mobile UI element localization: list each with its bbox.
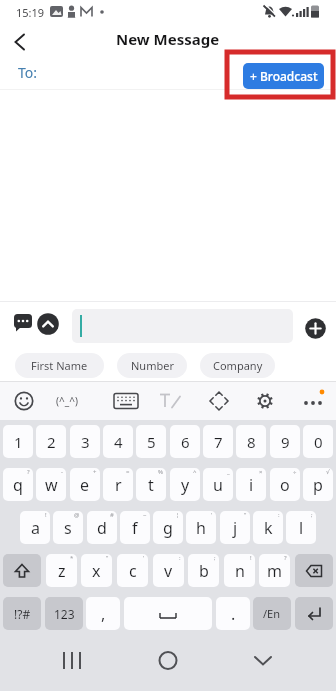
button[interactable] xyxy=(151,381,189,420)
button[interactable]: First Name xyxy=(15,353,104,378)
button[interactable]: y xyxy=(170,468,200,501)
button[interactable]: j xyxy=(220,511,250,544)
button[interactable]: x xyxy=(81,554,112,587)
button[interactable]: b xyxy=(188,554,219,587)
button[interactable] xyxy=(305,318,326,339)
button[interactable]: !?# xyxy=(3,597,41,630)
button[interactable]: i xyxy=(236,468,266,501)
button[interactable] xyxy=(294,381,332,420)
staticText: k xyxy=(264,517,273,539)
button[interactable] xyxy=(295,597,333,630)
button[interactable] xyxy=(200,381,238,420)
button[interactable] xyxy=(295,554,333,587)
staticText: c xyxy=(129,560,137,582)
staticText: w xyxy=(45,474,58,496)
staticText: q xyxy=(13,474,23,496)
button[interactable]: g xyxy=(153,511,183,544)
button[interactable]: 8 xyxy=(236,425,266,458)
button[interactable]: t xyxy=(136,468,166,501)
button[interactable]: 5 xyxy=(136,425,166,458)
button[interactable]: q xyxy=(3,468,33,501)
staticText: × xyxy=(259,468,263,476)
staticText: √ xyxy=(326,468,330,475)
staticText: f xyxy=(132,517,138,539)
button[interactable]: o xyxy=(270,468,300,501)
staticText: p xyxy=(313,474,323,496)
staticText: !?# xyxy=(14,606,31,622)
staticText: ÷ xyxy=(293,468,297,476)
button[interactable]: 4 xyxy=(103,425,133,458)
staticText: u xyxy=(213,474,223,496)
button[interactable]: 123 xyxy=(45,597,83,630)
staticText: i xyxy=(249,474,254,496)
button[interactable] xyxy=(72,309,293,343)
button[interactable]: Company xyxy=(200,353,275,378)
button[interactable] xyxy=(52,381,90,420)
button[interactable]: Number xyxy=(117,353,187,378)
button[interactable]: 9 xyxy=(270,425,300,458)
button[interactable]: . xyxy=(216,597,250,630)
staticText: l xyxy=(299,517,304,539)
staticText: * xyxy=(70,554,74,562)
staticText: 123 xyxy=(54,606,75,622)
button[interactable] xyxy=(107,381,145,420)
button[interactable]: /En xyxy=(253,597,291,630)
staticText: + xyxy=(93,468,97,476)
staticText: " xyxy=(244,511,247,519)
button[interactable]: n xyxy=(224,554,255,587)
staticText: 1 xyxy=(14,432,23,452)
staticText: s xyxy=(64,517,72,539)
staticText: x xyxy=(92,560,101,582)
staticText: v xyxy=(164,560,173,582)
staticText: n xyxy=(235,560,245,582)
staticText: r xyxy=(115,474,122,496)
button[interactable] xyxy=(5,381,43,420)
button[interactable]: h xyxy=(186,511,216,544)
button[interactable]: 0 xyxy=(303,425,333,458)
button[interactable] xyxy=(6,28,34,56)
button[interactable]: z xyxy=(46,554,77,587)
staticText: ^ xyxy=(193,468,197,476)
button[interactable]: + Broadcast xyxy=(243,63,324,89)
button[interactable]: c xyxy=(117,554,148,587)
button[interactable]: e xyxy=(70,468,100,501)
button[interactable]: r xyxy=(103,468,133,501)
staticText: ? xyxy=(27,468,30,476)
staticText: : xyxy=(278,511,280,519)
button[interactable]: , xyxy=(86,597,120,630)
button[interactable]: 2 xyxy=(36,425,66,458)
button[interactable]: 6 xyxy=(170,425,200,458)
button[interactable]: s xyxy=(53,511,83,544)
button[interactable] xyxy=(56,648,88,676)
button[interactable]: d xyxy=(87,511,117,544)
button[interactable]: 1 xyxy=(3,425,33,458)
button[interactable]: k xyxy=(253,511,283,544)
button[interactable]: l xyxy=(286,511,316,544)
button[interactable] xyxy=(10,311,36,337)
button[interactable] xyxy=(247,648,279,676)
staticText: (^_^) xyxy=(56,394,78,408)
button[interactable]: 3 xyxy=(70,425,100,458)
button[interactable]: 7 xyxy=(203,425,233,458)
button[interactable] xyxy=(37,313,59,335)
staticText: + Broadcast xyxy=(250,68,318,84)
button[interactable] xyxy=(152,648,184,676)
button[interactable]: m xyxy=(259,554,290,587)
staticText: : xyxy=(179,554,181,562)
staticText: ! xyxy=(250,554,252,562)
button[interactable]: a xyxy=(20,511,50,544)
staticText: 3 xyxy=(81,432,90,452)
staticText: h xyxy=(196,517,206,539)
button[interactable] xyxy=(124,597,212,630)
button[interactable] xyxy=(3,554,41,587)
button[interactable]: w xyxy=(36,468,66,501)
button[interactable]: p xyxy=(303,468,333,501)
staticText: j xyxy=(233,517,238,539)
staticText: . xyxy=(231,603,236,625)
button[interactable]: u xyxy=(203,468,233,501)
button[interactable]: v xyxy=(153,554,184,587)
staticText: ; xyxy=(311,511,313,519)
button[interactable] xyxy=(246,381,284,420)
button[interactable]: f xyxy=(120,511,150,544)
staticText: % xyxy=(158,468,163,476)
